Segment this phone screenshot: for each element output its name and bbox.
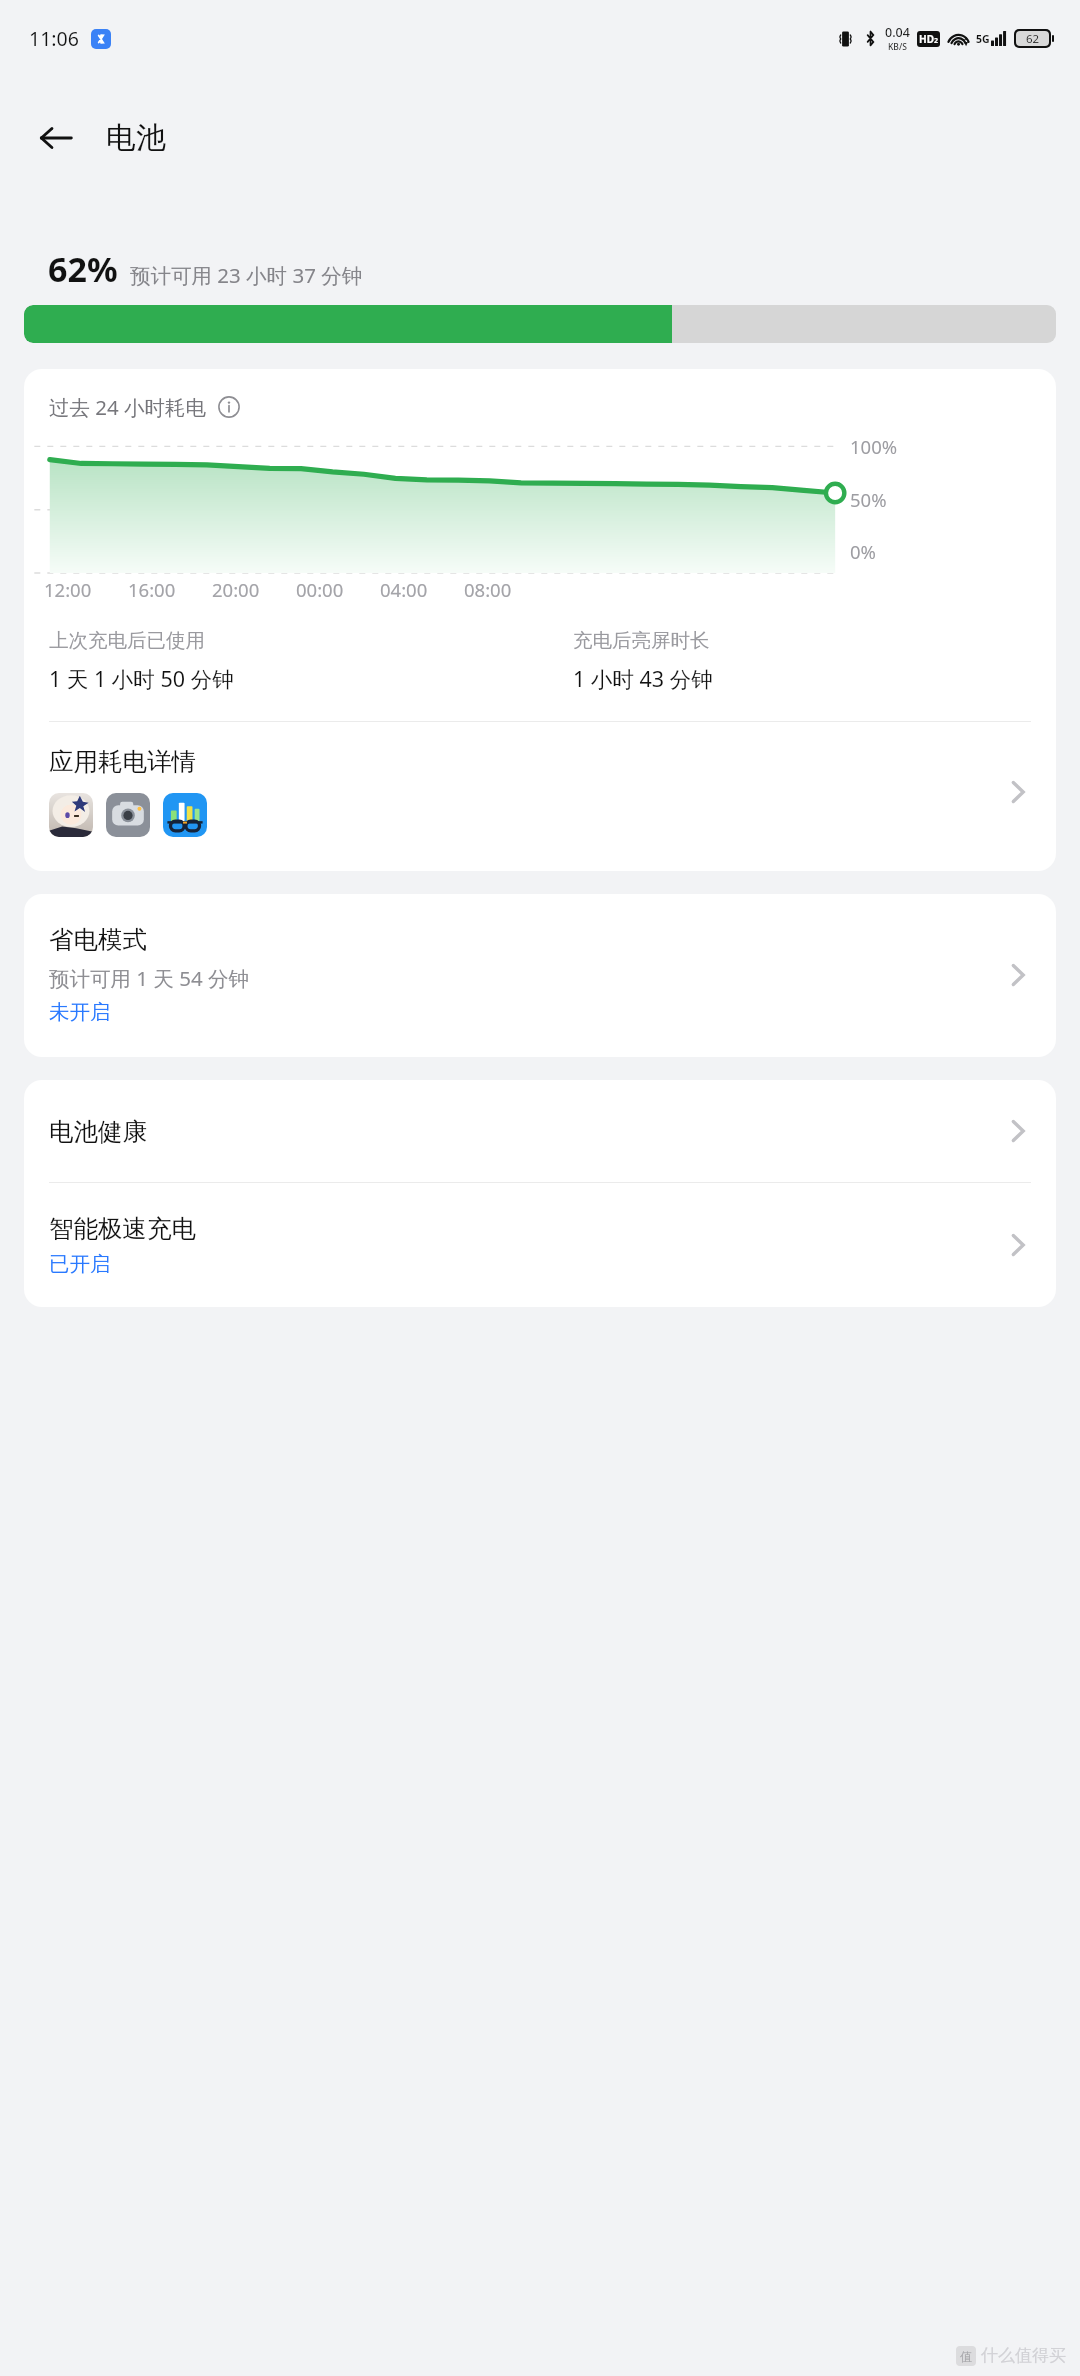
- staticText: 1 天 1 小时 50 分钟: [49, 664, 234, 693]
- staticText: 1 小时 43 分钟: [573, 664, 713, 693]
- staticText: 12:00: [44, 577, 92, 602]
- button[interactable]: Back: [22, 104, 90, 172]
- staticText: 过去 24 小时耗电: [49, 393, 207, 421]
- staticText: 62: [1026, 31, 1040, 46]
- staticText: 什么值得买: [981, 2345, 1066, 2366]
- staticText: 预计可用 1 天 54 分钟: [49, 964, 249, 992]
- staticText: 100%: [850, 434, 898, 459]
- staticText: 电池: [106, 119, 166, 157]
- staticText: 已开启: [49, 1251, 111, 1277]
- staticText: 值: [960, 2349, 972, 2364]
- button[interactable]: 省电模式: [24, 894, 1056, 1057]
- staticText: 智能极速充电: [49, 1213, 196, 1244]
- staticText: 充电后亮屏时长: [573, 628, 710, 653]
- button[interactable]: Info: [218, 396, 240, 418]
- staticText: 04:00: [380, 577, 428, 602]
- staticText: 50%: [850, 487, 887, 512]
- staticText: 应用耗电详情: [49, 746, 196, 777]
- button[interactable]: 应用耗电详情: [24, 722, 1056, 861]
- button[interactable]: 电池健康: [24, 1080, 1056, 1182]
- button[interactable]: 智能极速充电: [24, 1183, 1056, 1307]
- staticText: 0%: [850, 539, 876, 564]
- staticText: 0.04: [885, 24, 910, 41]
- staticText: 未开启: [49, 999, 111, 1025]
- staticText: HD: [919, 32, 934, 46]
- staticText: 20:00: [212, 577, 260, 602]
- staticText: 5G: [976, 32, 990, 46]
- staticText: 08:00: [464, 577, 512, 602]
- staticText: 省电模式: [49, 924, 147, 955]
- staticText: 11:06: [29, 25, 79, 52]
- staticText: 16:00: [128, 577, 176, 602]
- staticText: KB/S: [888, 41, 907, 53]
- staticText: 62%: [48, 246, 118, 292]
- staticText: 00:00: [296, 577, 344, 602]
- staticText: 预计可用 23 小时 37 分钟: [130, 261, 363, 289]
- staticText: 上次充电后已使用: [49, 628, 205, 653]
- staticText: 电池健康: [49, 1116, 147, 1147]
- staticText: 2: [934, 36, 939, 46]
